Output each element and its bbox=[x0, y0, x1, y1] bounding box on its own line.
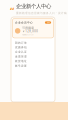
button[interactable]: 我的订单 bbox=[11, 40, 55, 45]
button[interactable]: 企业认证 bbox=[11, 50, 55, 54]
button[interactable]: 去升级 bbox=[45, 21, 51, 24]
staticText: 去升级 bbox=[46, 22, 49, 23]
button[interactable]: 账号设置 bbox=[11, 63, 55, 68]
staticText: 收货地址 bbox=[15, 59, 27, 63]
staticText: 账号设置 bbox=[15, 64, 27, 67]
staticText: 发票管理 bbox=[15, 55, 27, 58]
button[interactable]: 发票管理 bbox=[11, 54, 55, 59]
staticText: “ bbox=[10, 4, 14, 16]
staticText: 重新梳理信息层级与服务入口 · 设计稿 bbox=[16, 11, 67, 15]
staticText: 企业认证 bbox=[15, 50, 27, 54]
button[interactable]: 收货地址 bbox=[11, 59, 55, 63]
staticText: 可用额度 ￥128,000 bbox=[22, 26, 38, 33]
staticText: 优惠券包 bbox=[15, 46, 27, 49]
staticText: 有效期至 2025-12-31 bbox=[22, 34, 34, 36]
staticText: 企业新个人中心 bbox=[16, 3, 51, 10]
staticText: 我的订单 bbox=[15, 41, 27, 44]
staticText: 企业会员中心 bbox=[15, 21, 33, 24]
button[interactable]: 优惠券包 bbox=[11, 45, 55, 50]
